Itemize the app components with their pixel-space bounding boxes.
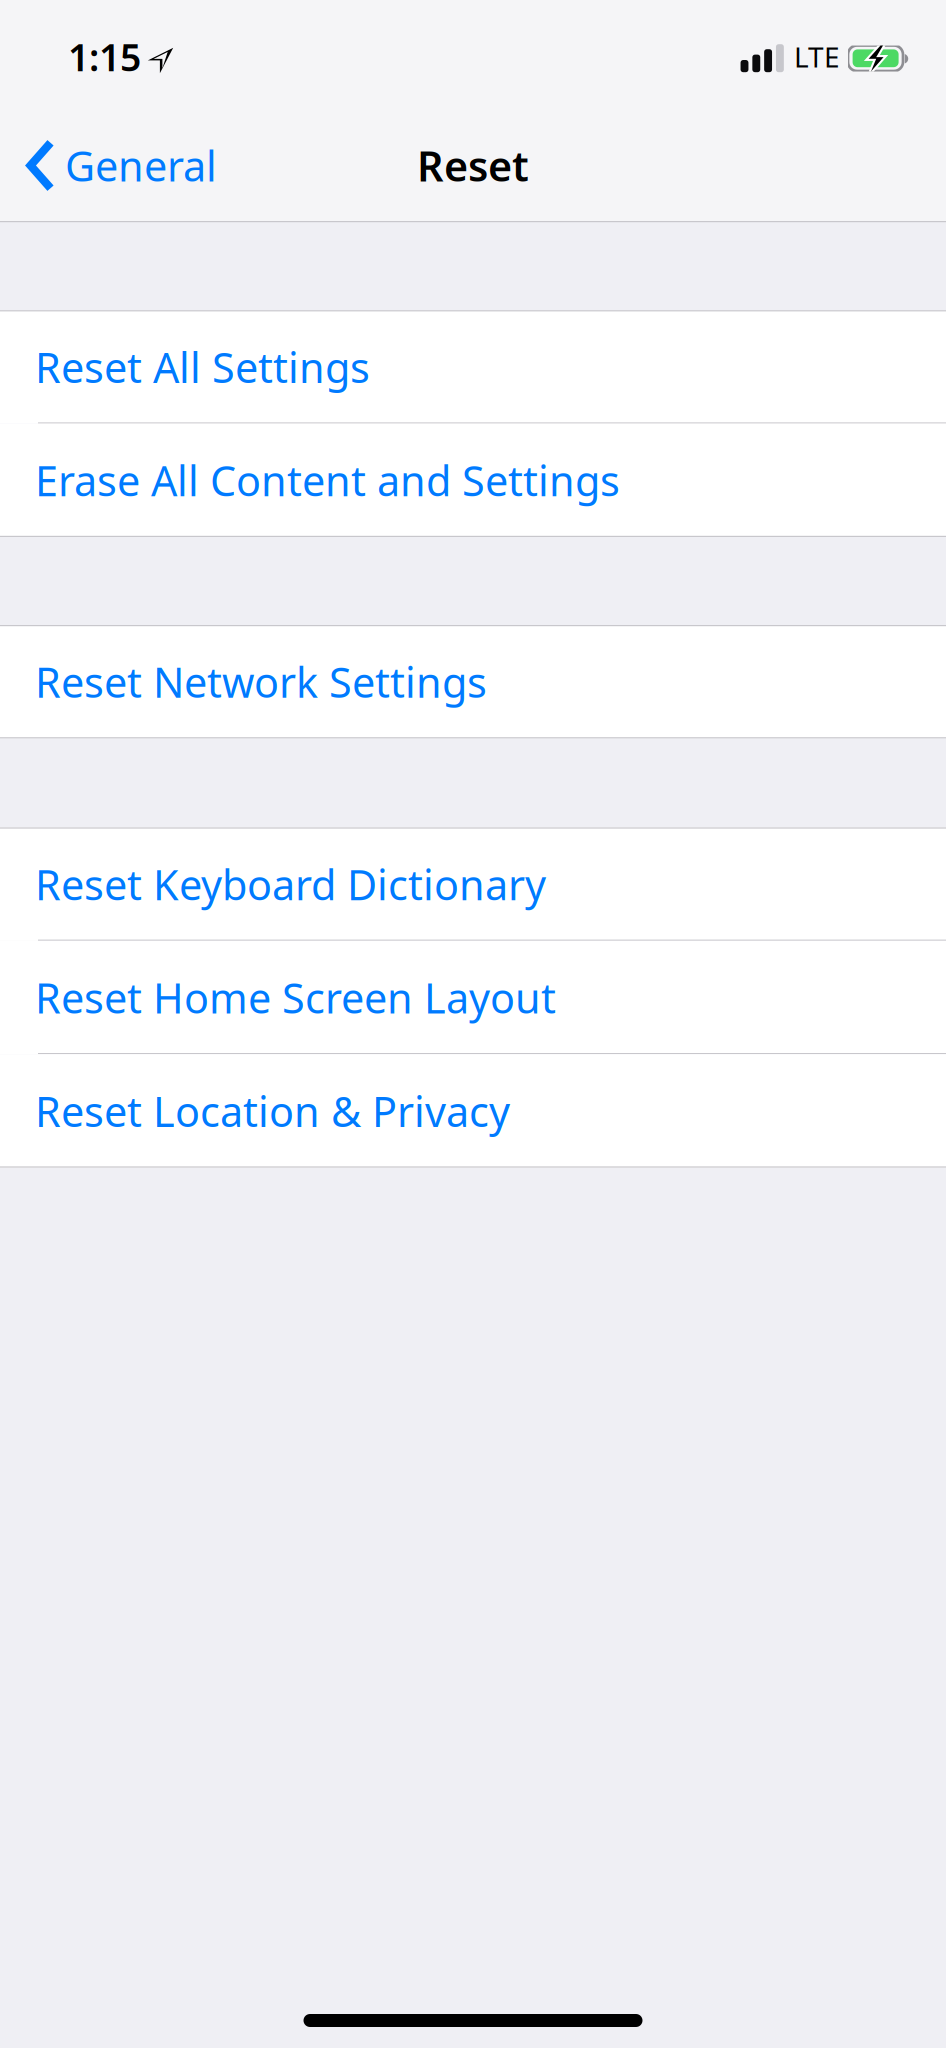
staticText: 1:15 [68, 32, 141, 82]
staticText: Reset [417, 138, 529, 193]
button[interactable]: General [0, 110, 237, 221]
staticText: Reset Network Settings [35, 654, 487, 709]
staticText: Reset Location & Privacy [35, 1083, 510, 1138]
button[interactable]: Reset Location & Privacy [0, 1054, 946, 1168]
button[interactable]: Reset Keyboard Dictionary [0, 827, 946, 941]
staticText: Reset All Settings [35, 339, 370, 394]
button[interactable]: Erase All Content and Settings [0, 424, 946, 537]
button[interactable]: Reset Network Settings [0, 625, 946, 738]
staticText: Erase All Content and Settings [35, 453, 620, 508]
staticText: Reset Keyboard Dictionary [35, 857, 546, 912]
staticText: General [65, 138, 217, 193]
button[interactable]: Reset All Settings [0, 310, 946, 424]
staticText: Reset Home Screen Layout [35, 970, 556, 1025]
staticText: LTE [794, 38, 840, 75]
button[interactable]: Reset Home Screen Layout [0, 941, 946, 1054]
